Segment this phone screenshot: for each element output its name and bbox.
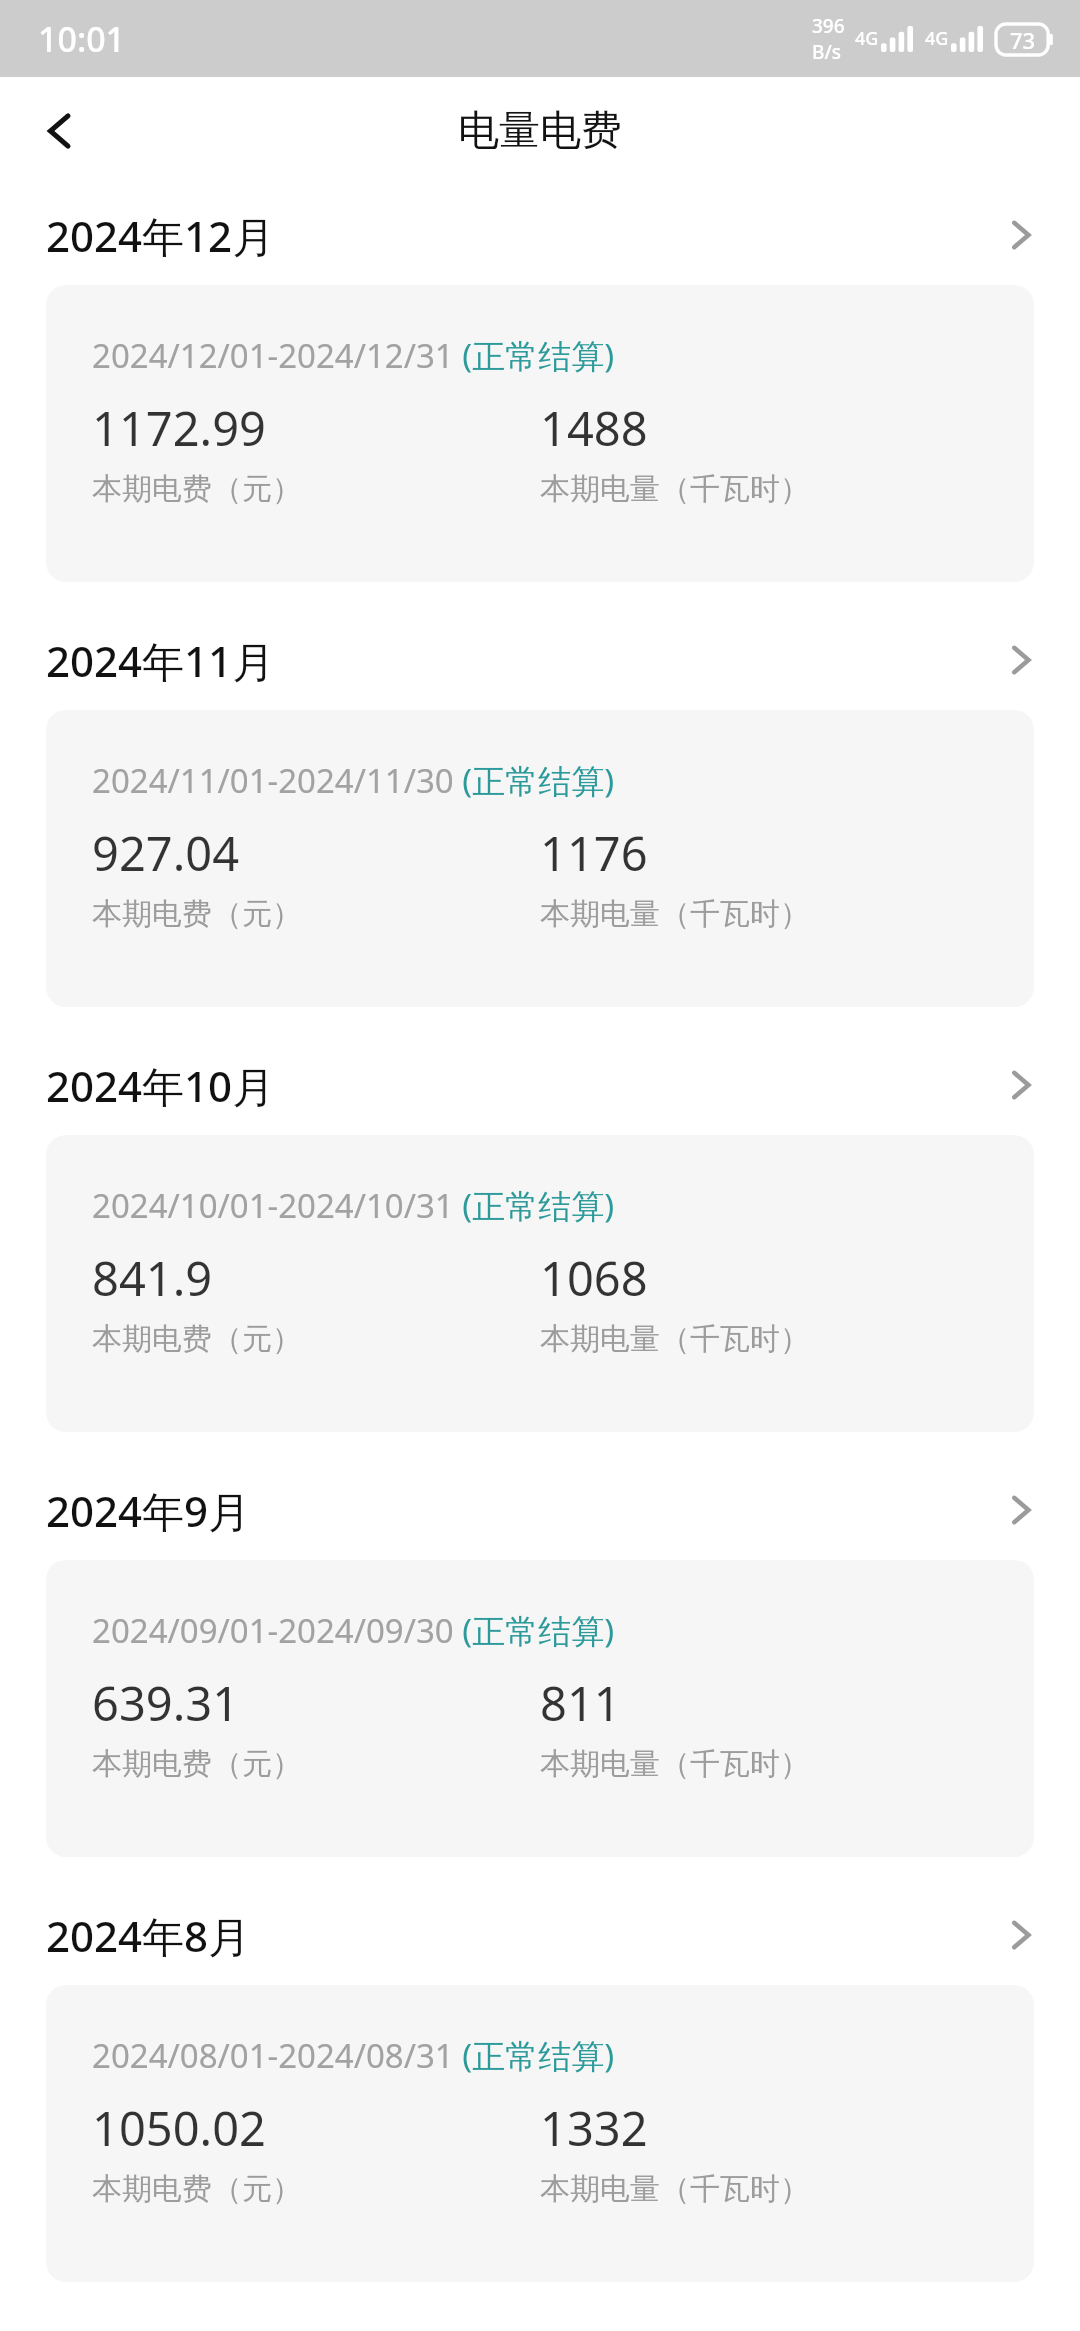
staticText: 811 <box>540 1671 621 1735</box>
button[interactable]: 2024/11/01-2024/11/30 (正常结算) <box>46 710 1034 1007</box>
staticText: 本期电费（元） <box>92 2170 302 2208</box>
staticText: 本期电量（千瓦时） <box>540 470 810 508</box>
staticText: 2024年10月 <box>46 1057 275 1114</box>
staticText: 639.31 <box>92 1671 240 1735</box>
staticText: 本期电量（千瓦时） <box>540 1745 810 1783</box>
button[interactable]: Back <box>18 89 102 173</box>
staticText: 本期电量（千瓦时） <box>540 2170 810 2208</box>
staticText: 2024/11/01-2024/11/30 (正常结算) <box>92 758 615 803</box>
staticText: 1176 <box>540 821 648 885</box>
staticText: 2024/09/01-2024/09/30 (正常结算) <box>92 1608 615 1653</box>
button[interactable]: 2024年11月 <box>0 610 1080 710</box>
staticText: 本期电费（元） <box>92 1320 302 1358</box>
staticText: 4G <box>925 26 949 51</box>
staticText: 1050.02 <box>92 2096 266 2160</box>
staticText: 本期电费（元） <box>92 895 302 933</box>
staticText: 本期电量（千瓦时） <box>540 895 810 933</box>
staticText: 2024/08/01-2024/08/31 (正常结算) <box>92 2033 615 2078</box>
button[interactable]: 2024/12/01-2024/12/31 (正常结算) <box>46 285 1034 582</box>
staticText: 1068 <box>540 1246 648 1310</box>
staticText: 4G <box>855 26 879 51</box>
button[interactable]: 2024/08/01-2024/08/31 (正常结算) <box>46 1985 1034 2282</box>
button[interactable]: 2024/10/01-2024/10/31 (正常结算) <box>46 1135 1034 1432</box>
button[interactable]: 2024年9月 <box>0 1460 1080 1560</box>
staticText: 2024/10/01-2024/10/31 (正常结算) <box>92 1183 615 1228</box>
staticText: 1332 <box>540 2096 648 2160</box>
staticText: 2024年8月 <box>46 1907 251 1964</box>
staticText: 1172.99 <box>92 396 266 460</box>
staticText: 本期电费（元） <box>92 1745 302 1783</box>
staticText: 396 <box>812 13 845 39</box>
staticText: 2024/12/01-2024/12/31 (正常结算) <box>92 333 615 378</box>
staticText: 841.9 <box>92 1246 213 1310</box>
button[interactable]: 2024/09/01-2024/09/30 (正常结算) <box>46 1560 1034 1857</box>
staticText: 2024年12月 <box>46 207 275 264</box>
staticText: 2024年11月 <box>46 632 275 689</box>
staticText: 10:01 <box>38 16 126 62</box>
staticText: 2024年9月 <box>46 1482 251 1539</box>
staticText: 927.04 <box>92 821 240 885</box>
staticText: 电量电费 <box>458 105 622 157</box>
button[interactable]: 2024年12月 <box>0 185 1080 285</box>
staticText: 1488 <box>540 396 648 460</box>
staticText: 本期电费（元） <box>92 470 302 508</box>
staticText: 本期电量（千瓦时） <box>540 1320 810 1358</box>
button[interactable]: 2024年10月 <box>0 1035 1080 1135</box>
staticText: B/s <box>812 39 841 65</box>
staticText: 73 <box>1010 25 1036 55</box>
button[interactable]: 2024年8月 <box>0 1885 1080 1985</box>
